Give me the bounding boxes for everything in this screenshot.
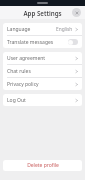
staticText: Language — [7, 26, 31, 33]
staticText: Log Out — [7, 97, 26, 104]
staticText: Chat rules — [7, 68, 31, 75]
button[interactable]: Close settings — [72, 8, 81, 17]
staticText: Privacy policy — [7, 81, 39, 88]
staticText: Translate messages — [7, 39, 54, 46]
button[interactable]: Language — [3, 23, 82, 35]
staticText: App Settings — [23, 9, 62, 17]
staticText: User agreement — [7, 55, 46, 62]
button[interactable]: Delete profile — [3, 160, 82, 171]
button[interactable]: User agreement — [3, 52, 82, 64]
button[interactable]: Log Out — [3, 94, 82, 106]
button[interactable]: Translate messages toggle — [68, 39, 78, 45]
staticText: English — [56, 26, 73, 33]
button[interactable]: Chat rules — [3, 65, 82, 77]
button[interactable]: Privacy policy — [3, 78, 82, 90]
button[interactable]: Translate messages — [3, 36, 82, 48]
staticText: Delete profile — [27, 162, 59, 169]
